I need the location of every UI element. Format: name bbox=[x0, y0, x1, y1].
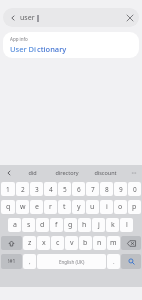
button[interactable]: v bbox=[65, 236, 78, 250]
button[interactable]: did bbox=[17, 165, 47, 180]
staticText: 6 bbox=[77, 185, 81, 194]
button[interactable]: i bbox=[100, 200, 113, 214]
button[interactable]: Back bbox=[6, 11, 19, 24]
button[interactable]: a bbox=[8, 218, 21, 232]
staticText: 3 bbox=[35, 185, 39, 194]
staticText: l bbox=[126, 220, 128, 230]
button[interactable]: u bbox=[86, 200, 99, 214]
staticText: user bbox=[20, 13, 35, 23]
staticText: 0 bbox=[133, 185, 137, 194]
button[interactable]: h bbox=[78, 218, 91, 232]
button[interactable]: Back bbox=[3, 8, 139, 27]
button[interactable]: c bbox=[51, 236, 64, 250]
button[interactable]: d bbox=[36, 218, 49, 232]
staticText: English (UK) bbox=[59, 259, 85, 265]
staticText: q bbox=[6, 202, 11, 212]
staticText: p bbox=[132, 202, 137, 212]
button[interactable]: directory bbox=[47, 165, 86, 180]
button[interactable]: 5 bbox=[58, 182, 71, 196]
staticText: 7 bbox=[91, 185, 95, 194]
button[interactable]: Search bbox=[121, 254, 141, 269]
staticText: a bbox=[13, 220, 17, 230]
button[interactable]: p bbox=[128, 200, 141, 214]
button[interactable]: q bbox=[1, 200, 15, 214]
button[interactable]: , bbox=[23, 254, 36, 269]
staticText: 4 bbox=[49, 185, 53, 194]
staticText: y bbox=[77, 202, 81, 212]
staticText: 1 bbox=[6, 185, 10, 194]
staticText: e bbox=[35, 202, 39, 212]
staticText: User Di bbox=[10, 44, 37, 54]
staticText: w bbox=[20, 202, 26, 212]
staticText: f bbox=[55, 220, 58, 230]
button[interactable]: r bbox=[44, 200, 57, 214]
staticText: , bbox=[29, 258, 31, 266]
button[interactable]: 4 bbox=[44, 182, 57, 196]
button[interactable]: t bbox=[58, 200, 71, 214]
button[interactable]: Backspace bbox=[121, 236, 141, 250]
button[interactable]: y bbox=[72, 200, 85, 214]
staticText: . bbox=[113, 258, 115, 266]
button[interactable]: 3 bbox=[30, 182, 43, 196]
button[interactable]: Space bbox=[37, 254, 106, 269]
staticText: r bbox=[49, 202, 52, 212]
button[interactable]: 7 bbox=[86, 182, 99, 196]
button[interactable]: 2 bbox=[16, 182, 29, 196]
staticText: 5 bbox=[63, 185, 67, 194]
staticText: did bbox=[28, 169, 37, 176]
staticText: 8 bbox=[105, 185, 109, 194]
button[interactable]: f bbox=[50, 218, 63, 232]
button[interactable]: . bbox=[107, 254, 120, 269]
button[interactable]: o bbox=[114, 200, 127, 214]
staticText: discount bbox=[94, 169, 117, 176]
staticText: m bbox=[110, 238, 117, 248]
staticText: g bbox=[68, 220, 73, 230]
staticText: u bbox=[90, 202, 95, 212]
button[interactable]: s bbox=[22, 218, 35, 232]
staticText: App info bbox=[10, 36, 28, 42]
button[interactable]: j bbox=[92, 218, 105, 232]
button[interactable]: w bbox=[16, 200, 29, 214]
staticText: b bbox=[83, 238, 88, 248]
button[interactable]: g bbox=[64, 218, 77, 232]
staticText: h bbox=[82, 220, 87, 230]
button[interactable]: n bbox=[93, 236, 106, 250]
button[interactable]: z bbox=[23, 236, 36, 250]
staticText: c bbox=[56, 238, 60, 248]
staticText: 2 bbox=[21, 185, 25, 194]
button[interactable]: m bbox=[107, 236, 120, 250]
button[interactable]: App info bbox=[3, 32, 139, 58]
button[interactable]: More options bbox=[125, 165, 142, 180]
staticText: directory bbox=[55, 169, 79, 176]
staticText: j bbox=[98, 220, 100, 230]
staticText: 9 bbox=[119, 185, 123, 194]
button[interactable]: Clear search bbox=[123, 11, 136, 24]
button[interactable]: 0 bbox=[128, 182, 141, 196]
button[interactable]: 8 bbox=[100, 182, 113, 196]
staticText: k bbox=[111, 220, 115, 230]
button[interactable]: 1 bbox=[1, 182, 15, 196]
staticText: d bbox=[40, 220, 45, 230]
button[interactable]: e bbox=[30, 200, 43, 214]
staticText: i bbox=[106, 202, 108, 212]
button[interactable]: k bbox=[106, 218, 119, 232]
staticText: t bbox=[63, 202, 66, 212]
button[interactable]: l bbox=[120, 218, 133, 232]
staticText: ctionary bbox=[37, 44, 67, 54]
button[interactable]: Shift bbox=[1, 236, 22, 250]
button[interactable]: discount bbox=[86, 165, 125, 180]
staticText: o bbox=[118, 202, 123, 212]
staticText: n bbox=[97, 238, 102, 248]
staticText: !#1 bbox=[8, 258, 16, 265]
staticText: z bbox=[28, 238, 32, 248]
staticText: x bbox=[42, 238, 46, 248]
button[interactable]: Symbols bbox=[1, 254, 22, 269]
staticText: v bbox=[70, 238, 74, 248]
button[interactable]: 9 bbox=[114, 182, 127, 196]
button[interactable]: 6 bbox=[72, 182, 85, 196]
staticText: s bbox=[27, 220, 31, 230]
button[interactable]: x bbox=[37, 236, 50, 250]
button[interactable]: Previous suggestions bbox=[0, 165, 17, 180]
button[interactable]: b bbox=[79, 236, 92, 250]
